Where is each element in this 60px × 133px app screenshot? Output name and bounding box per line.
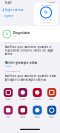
staticText: Saber mais bbox=[42, 22, 50, 24]
staticText: Atalhos bbox=[49, 98, 54, 100]
staticText: activo bbox=[13, 35, 17, 37]
staticText: O seu relatório bbox=[41, 5, 51, 6]
button[interactable]: Mapas bbox=[44, 106, 59, 118]
staticText: Mapas bbox=[49, 116, 54, 118]
staticText: Escolha o que acontece quando estas apli… bbox=[4, 74, 55, 81]
button[interactable]: Câmara bbox=[1, 88, 15, 100]
button[interactable]: Música bbox=[30, 106, 44, 118]
staticText: Acções aéreas bbox=[5, 8, 23, 12]
staticText: Protecção activa bbox=[40, 19, 52, 21]
staticText: Saiba mais bbox=[4, 65, 11, 67]
staticText: Socorro bbox=[34, 98, 41, 100]
staticText: Escolha o que acontece quando o disposit… bbox=[4, 45, 53, 56]
button[interactable]: Ligante bbox=[0, 14, 18, 17]
staticText: Música bbox=[35, 116, 40, 118]
staticText: ▪▪▪ bbox=[49, 1, 55, 4]
button[interactable]: Notas bbox=[1, 106, 15, 118]
staticText: Ligante bbox=[4, 14, 14, 17]
button[interactable]: A bbox=[0, 26, 60, 42]
button[interactable]: Saiba mais bbox=[4, 64, 11, 67]
staticText: Notas bbox=[6, 116, 10, 118]
button[interactable]: Socorro bbox=[30, 88, 44, 100]
staticText: Acções em aplicações bbox=[4, 71, 20, 72]
staticText: Saúde bbox=[20, 98, 25, 100]
staticText: 9:41 bbox=[5, 1, 12, 5]
button[interactable]: Acções aéreas bbox=[0, 6, 25, 14]
staticText: A bbox=[6, 32, 8, 36]
staticText: Manter gravação activa bbox=[4, 61, 37, 64]
staticText: Ok bbox=[44, 11, 48, 14]
staticText: Diagnóstico bbox=[13, 31, 30, 35]
staticText: Sobre as acções aéreas bbox=[4, 42, 23, 44]
button[interactable]: Atalhos bbox=[44, 88, 59, 100]
button[interactable]: Relógio bbox=[15, 106, 30, 118]
staticText: Câmara bbox=[5, 98, 11, 100]
staticText: Relógio bbox=[20, 116, 25, 118]
button[interactable]: Saúde bbox=[15, 88, 30, 100]
